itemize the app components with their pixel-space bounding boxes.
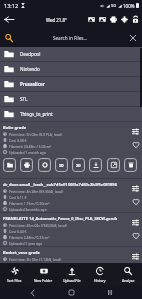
staticText: dr_door-small__hash__sub7d5e0150f3a7d60c… [3,182,117,187]
button[interactable]: Favourite [129,195,142,208]
staticText: 5G [111,3,117,8]
button[interactable]: Gallery [86,11,97,28]
button[interactable]: Basket_vase grade [0,247,142,276]
staticText: Uploaded 1 month ago [9,150,46,155]
button[interactable]: Download [89,158,102,172]
button[interactable]: Search [0,28,18,47]
button[interactable]: STL [0,92,142,106]
button[interactable]: 2D view [72,158,85,172]
staticText: Analyse [122,278,135,283]
staticText: Cost 6.11 € [9,195,27,200]
staticText: Boite grade [3,125,27,130]
staticText: Search in Files... [53,35,88,41]
button[interactable]: Back [0,11,18,28]
button[interactable]: Open folder [3,158,16,172]
button[interactable]: 3D view [55,158,68,172]
staticText: Upload File [63,278,81,283]
button[interactable]: Delete [124,158,137,172]
button[interactable]: Prusaslicer [0,77,142,91]
staticText: Deadpool [20,51,41,57]
button[interactable]: Print settings [129,182,142,195]
button[interactable]: Lock [130,11,141,28]
staticText: Print time: 45m 04s (768.02kB, local) [9,223,67,228]
staticText: Prusaslicer [20,81,45,87]
staticText: 13:12 [4,2,19,9]
button[interactable]: Things_to_print [0,107,142,121]
staticText: Uploaded 3months ago [9,207,47,212]
button[interactable]: History [86,263,114,286]
staticText: New Folder [34,278,53,283]
staticText: Basket_vase grade [3,250,40,255]
staticText: Wed 21.8° [46,17,67,23]
staticText: Print time: 5h 03m (8.0 PLA, local) [9,132,63,137]
button[interactable]: Photos [97,11,108,28]
staticText: History [94,278,106,283]
button[interactable]: FRANKLATTE 14_Automatic_Fence_0_Disc_PLA… [0,213,142,246]
button[interactable]: Nintendo [0,62,142,76]
button[interactable]: New Folder [29,263,58,286]
button[interactable]: dr_door-small__hash__sub7d5e0150f3a7d60c… [0,179,142,212]
button[interactable]: Clear search [124,28,142,47]
button[interactable]: Deadpool [0,47,142,61]
staticText: Filament 2.48m / 0.31cm³ [9,235,50,240]
button[interactable]: Plugins [119,11,130,28]
staticText: Print time: 3h 10m (1.12kB, local) [9,257,62,262]
staticText: 2D [76,163,81,168]
staticText: Sort Files [7,278,22,283]
button[interactable]: Printer [108,11,119,28]
button[interactable]: Recents [103,286,117,299]
staticText: STL [20,96,28,102]
button[interactable]: Share [107,158,120,172]
staticText: FRANKLATTE 14_Automatic_Fence_0_Disc_PLA… [3,216,117,221]
button[interactable]: Favourite [129,229,142,242]
staticText: Uploaded 1 year ago [9,241,43,246]
button[interactable]: Analyse [114,263,142,286]
button[interactable]: Print settings [129,216,142,229]
staticText: Cost 6.44 € [9,229,27,234]
staticText: Cost 3.38 € [9,138,27,143]
staticText: Print time: 4h 28m (89.65kB, local) [9,189,64,194]
button[interactable]: Home [64,286,78,299]
button[interactable]: Print [20,158,33,172]
staticText: Things_to_print [20,111,53,117]
staticText: Filament 24.48m / 3.02cm³ [9,144,52,149]
button[interactable]: Print settings [129,250,142,263]
button[interactable]: Favourite [129,138,142,151]
button[interactable]: Boite grade [0,122,142,155]
staticText: Nintendo [20,66,40,72]
staticText: Filament 1.15m / 0.30cm³ [9,201,50,206]
button[interactable]: Sort Files [0,263,29,286]
button[interactable]: Upload File [58,263,86,286]
button[interactable]: Settings [38,158,51,172]
button[interactable]: Back [25,286,39,299]
staticText: Cost 4.43 € [9,263,27,268]
button[interactable]: Favourite [129,263,142,276]
staticText: 3D [59,163,64,168]
staticText: 100% [123,3,135,9]
button[interactable]: Print settings [129,125,142,138]
